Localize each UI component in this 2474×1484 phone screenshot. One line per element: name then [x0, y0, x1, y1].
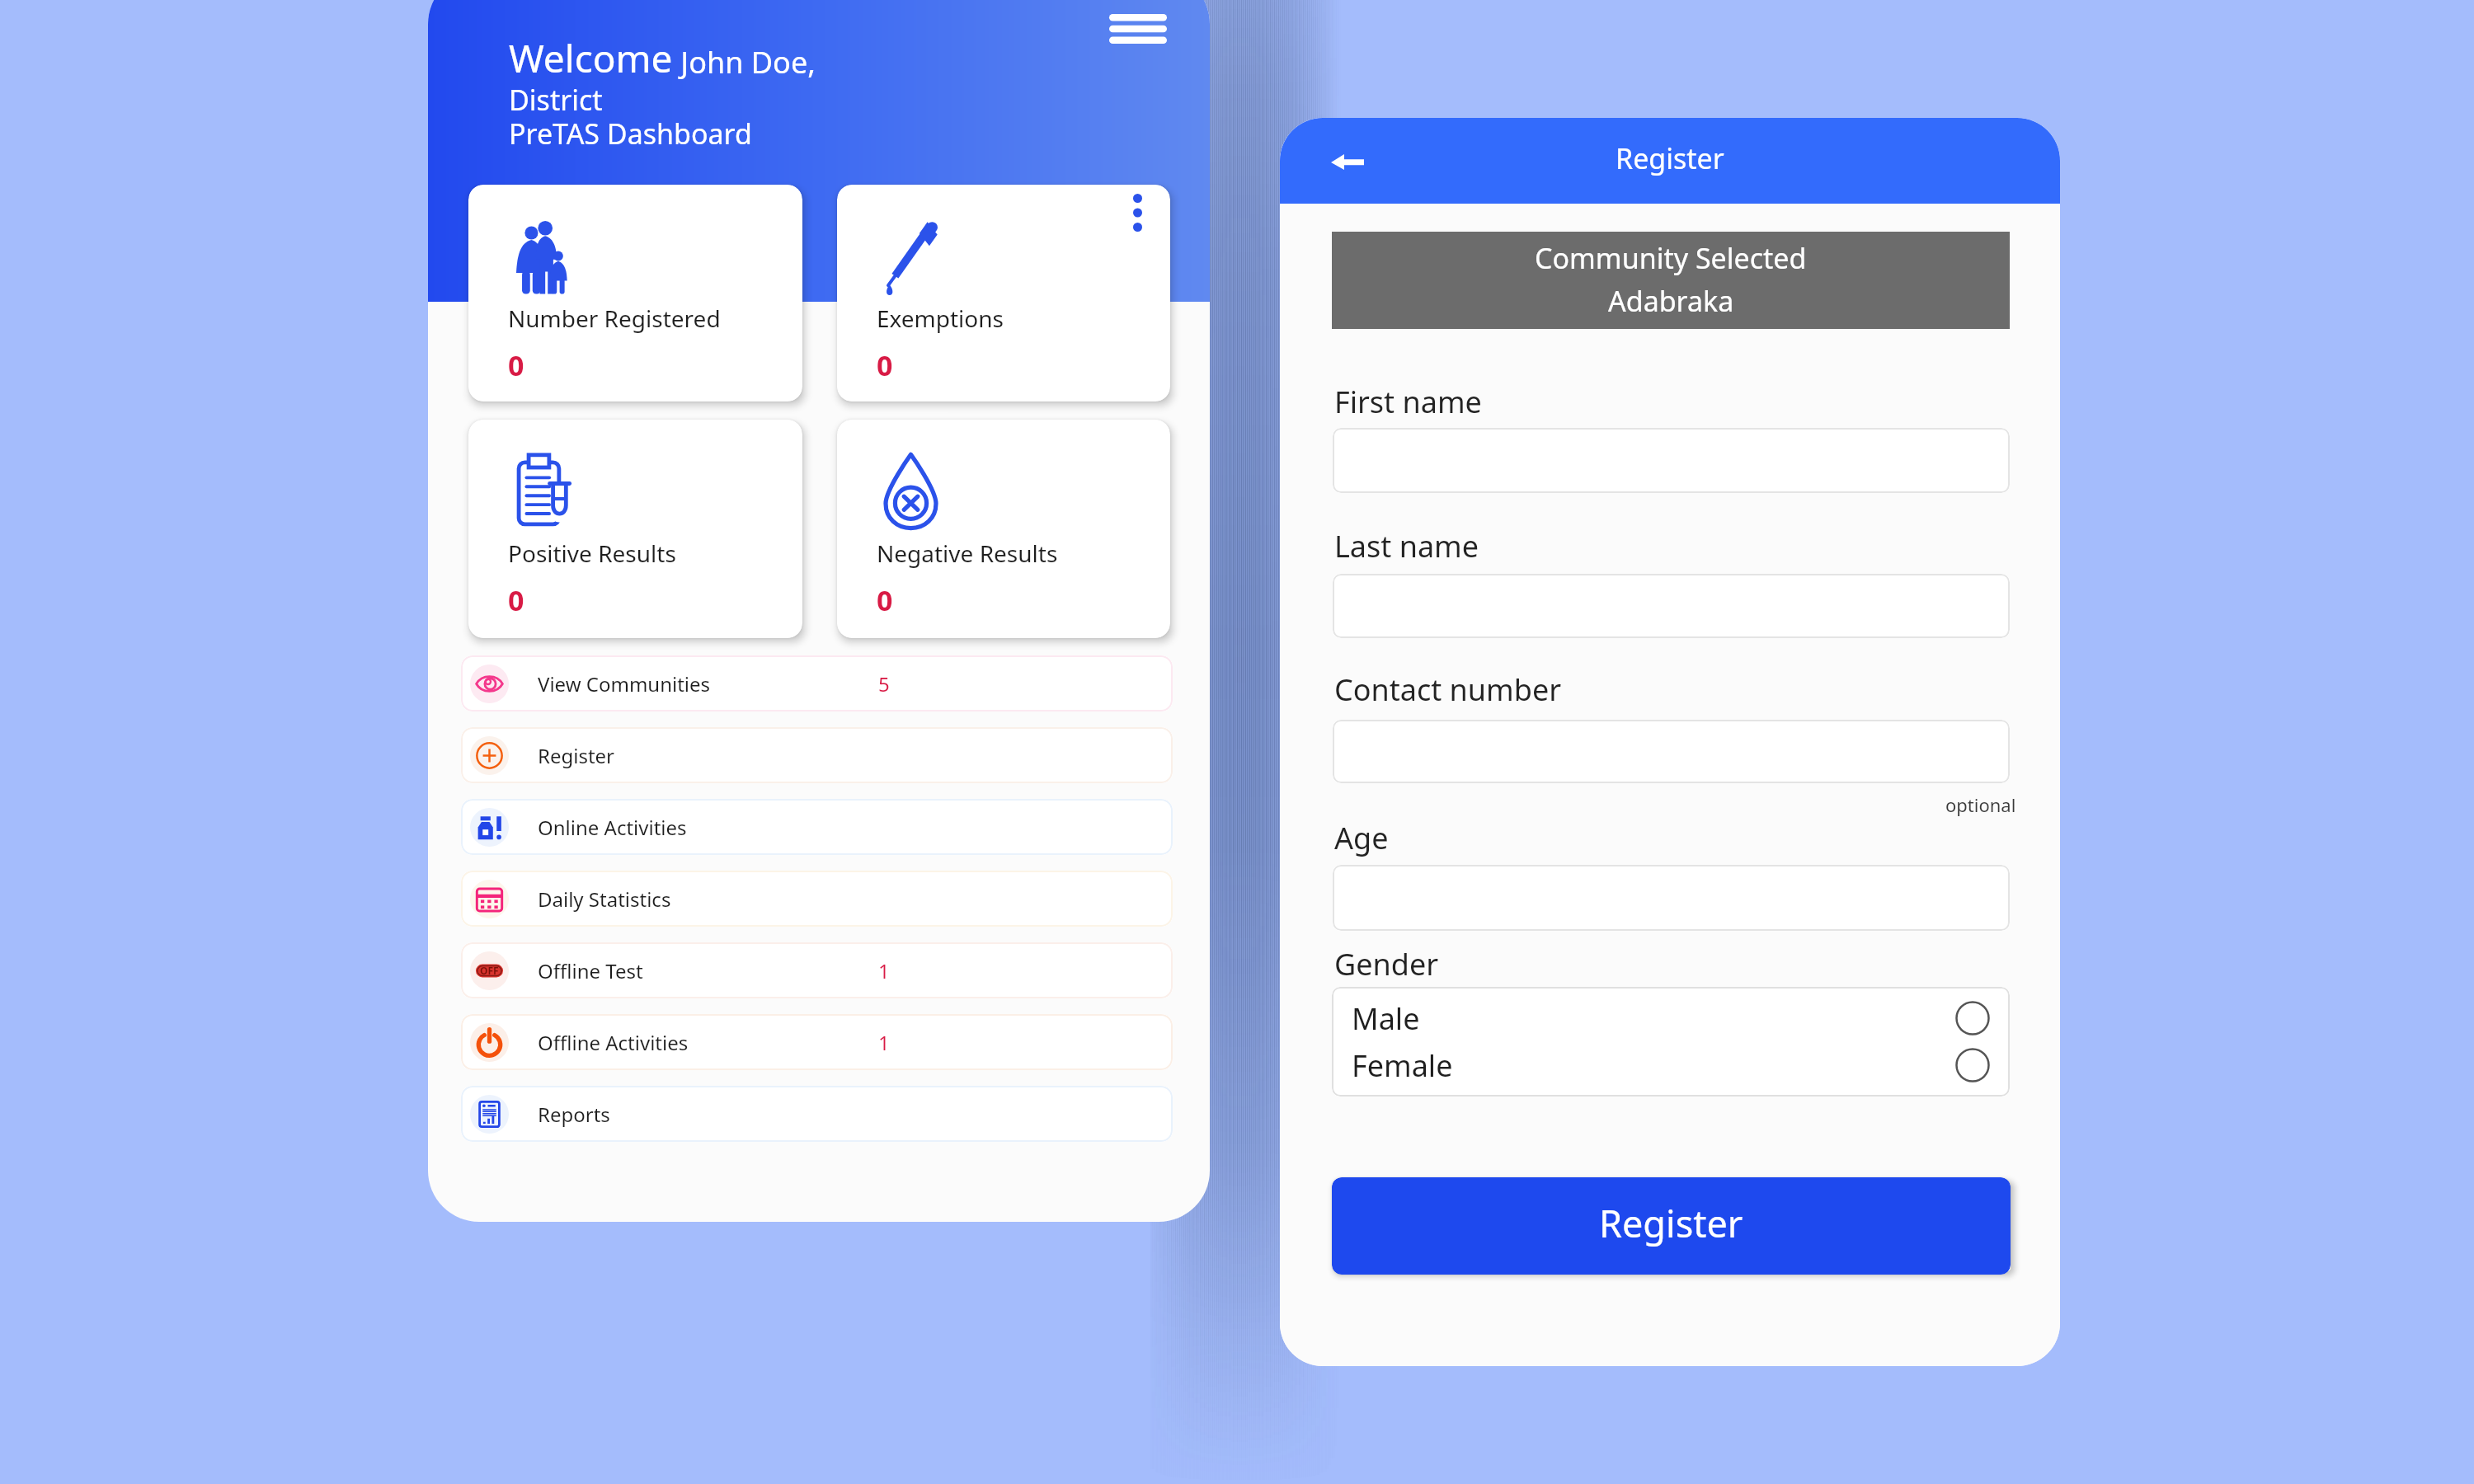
- button[interactable]: Online Activities: [461, 799, 1173, 855]
- button[interactable]: Daily Statistics: [461, 871, 1173, 927]
- staticText: First name: [1334, 382, 1482, 422]
- staticText: District: [509, 81, 603, 119]
- staticText: Reports: [538, 1101, 610, 1128]
- staticText: Male: [1352, 998, 1420, 1039]
- button[interactable]: Menu: [1093, 0, 1183, 58]
- button[interactable]: Female: [1332, 1040, 2010, 1090]
- staticText: Online Activities: [538, 814, 687, 841]
- staticText: Register: [538, 742, 615, 769]
- staticText: OFF: [480, 964, 499, 977]
- staticText: 0: [877, 581, 893, 619]
- staticText: Register: [1616, 139, 1724, 177]
- button[interactable]: Community Selected: [1332, 232, 2010, 329]
- staticText: optional: [1945, 792, 2016, 817]
- staticText: 0: [508, 581, 524, 619]
- staticText: Number Registered: [508, 303, 721, 334]
- button[interactable]: Register: [1332, 1177, 2011, 1275]
- button[interactable]: Number Registered: [468, 185, 802, 402]
- button[interactable]: [1333, 428, 2010, 493]
- button[interactable]: Negative Results: [837, 420, 1170, 638]
- staticText: Gender: [1334, 944, 1439, 984]
- button[interactable]: [1333, 574, 2010, 638]
- staticText: Offline Test: [538, 957, 643, 984]
- staticText: Exemptions: [877, 303, 1004, 334]
- button[interactable]: More options: [1117, 193, 1157, 232]
- staticText: Age: [1334, 818, 1389, 858]
- staticText: 0: [877, 346, 893, 384]
- button[interactable]: [1333, 865, 2010, 931]
- staticText: Community Selected: [1535, 239, 1807, 277]
- staticText: Contact number: [1334, 669, 1562, 710]
- staticText: Offline Activities: [538, 1029, 689, 1056]
- staticText: Last name: [1334, 526, 1479, 566]
- staticText: John Doe,: [673, 42, 816, 82]
- staticText: Adabraka: [1608, 282, 1734, 320]
- staticText: Daily Statistics: [538, 885, 671, 913]
- staticText: Welcome: [509, 32, 673, 84]
- staticText: Register: [1599, 1198, 1743, 1248]
- staticText: 1: [878, 1029, 890, 1056]
- button[interactable]: Offline Activities: [461, 1014, 1173, 1070]
- button[interactable]: Back: [1315, 133, 1380, 190]
- button[interactable]: More options: [837, 185, 1170, 402]
- button[interactable]: View Communities: [461, 655, 1173, 711]
- button[interactable]: OFF: [461, 942, 1173, 998]
- button[interactable]: [1333, 720, 2010, 783]
- button[interactable]: Positive Results: [468, 420, 802, 638]
- staticText: Female: [1352, 1045, 1453, 1086]
- button[interactable]: Male: [1332, 993, 2010, 1043]
- staticText: Positive Results: [508, 538, 676, 569]
- staticText: View Communities: [538, 670, 711, 697]
- staticText: 5: [878, 670, 890, 697]
- staticText: PreTAS Dashboard: [509, 115, 752, 153]
- button[interactable]: Register: [461, 727, 1173, 783]
- button[interactable]: Reports: [461, 1086, 1173, 1142]
- staticText: 0: [508, 346, 524, 384]
- staticText: 1: [878, 957, 890, 984]
- staticText: Negative Results: [877, 538, 1058, 569]
